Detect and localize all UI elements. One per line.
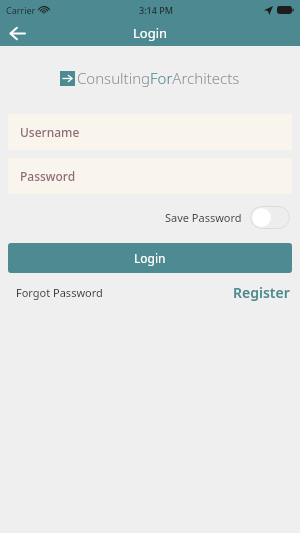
button[interactable]: Forgot Password: [8, 282, 111, 303]
staticText: 3:14 PM: [139, 4, 173, 16]
staticText: Forgot Password: [16, 285, 103, 300]
staticText: Password: [20, 168, 76, 184]
button[interactable]: Username: [8, 114, 292, 150]
staticText: Login: [133, 24, 168, 42]
button[interactable]: Register: [231, 280, 292, 305]
staticText: Register: [233, 283, 290, 302]
staticText: ConsultingForArchitects: [77, 68, 240, 88]
button[interactable]: Password: [8, 158, 292, 194]
staticText: Carrier: [6, 4, 36, 16]
button[interactable]: Back: [0, 20, 34, 46]
staticText: Save Password: [165, 210, 242, 225]
button[interactable]: Login: [8, 243, 292, 273]
staticText: Login: [134, 250, 166, 266]
staticText: Username: [20, 124, 80, 140]
button[interactable]: Save Password toggle: [250, 206, 290, 229]
